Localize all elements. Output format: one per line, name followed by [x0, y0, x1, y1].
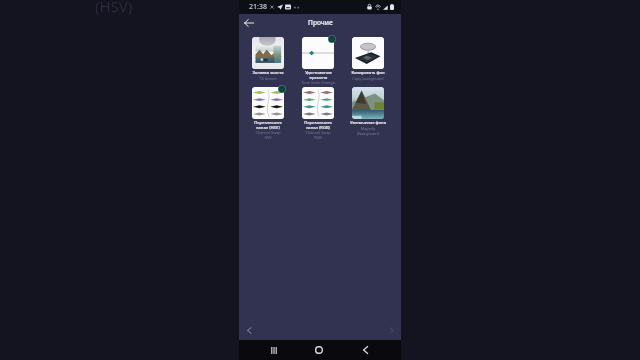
staticText: Channel Swap HSV	[255, 130, 281, 140]
staticText: Увеличение фона	[350, 120, 386, 126]
button[interactable]: Back	[240, 14, 257, 31]
staticText: Переключить канал (HSV)	[254, 120, 282, 130]
button[interactable]: Заливка холста	[243, 37, 293, 81]
button[interactable]: Переключить канал (HSV)	[243, 87, 293, 140]
staticText: Magnify Background	[357, 126, 379, 136]
staticText: ГБ белый	[259, 76, 277, 81]
staticText: Copy background	[352, 76, 384, 81]
staticText: Копировать фон	[351, 70, 385, 76]
button[interactable]: Увеличение фона	[343, 87, 393, 136]
button[interactable]: Home	[309, 340, 329, 360]
button[interactable]: Переключить канал (RGB)	[293, 87, 343, 140]
button[interactable]: Recents	[264, 340, 284, 360]
staticText: Time Scale Change	[301, 80, 335, 85]
staticText: Прочие	[308, 18, 333, 27]
button[interactable]: Back	[355, 340, 375, 360]
button[interactable]: Previous page	[241, 322, 257, 338]
button[interactable]: Next page	[383, 322, 399, 338]
staticText: Переключить канал (RGB)	[304, 120, 332, 130]
button[interactable]: Удостижение времени	[293, 37, 343, 85]
staticText: 21:38	[249, 2, 267, 12]
staticText: (HSV)	[95, 0, 133, 16]
staticText: Удостижение времени	[305, 70, 332, 80]
staticText: Заливка холста	[252, 70, 284, 76]
button[interactable]: Копировать фон	[343, 37, 393, 81]
staticText: Channel Swap RGB	[305, 130, 331, 140]
